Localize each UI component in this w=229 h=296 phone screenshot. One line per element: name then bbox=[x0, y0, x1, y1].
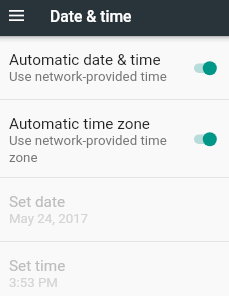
staticText: Date & time bbox=[50, 7, 132, 25]
staticText: May 24, 2017 bbox=[9, 211, 89, 227]
button[interactable]: Automatic date & time bbox=[0, 36, 229, 99]
staticText: Use network-provided time bbox=[9, 69, 167, 85]
button[interactable]: Set date bbox=[0, 178, 229, 241]
button[interactable]: Toggle automatic setting bbox=[191, 129, 219, 149]
staticText: 3:53 PM bbox=[9, 275, 58, 291]
button[interactable]: Toggle automatic setting bbox=[191, 58, 219, 78]
staticText: Automatic date & time bbox=[9, 51, 161, 69]
staticText: Use network-provided time zone bbox=[9, 133, 187, 165]
staticText: Set date bbox=[9, 193, 66, 211]
button[interactable]: Automatic time zone bbox=[0, 100, 229, 177]
button[interactable]: Set time bbox=[0, 242, 229, 296]
button[interactable]: Open navigation drawer bbox=[2, 1, 30, 29]
staticText: Set time bbox=[9, 257, 66, 275]
staticText: Automatic time zone bbox=[9, 115, 150, 133]
